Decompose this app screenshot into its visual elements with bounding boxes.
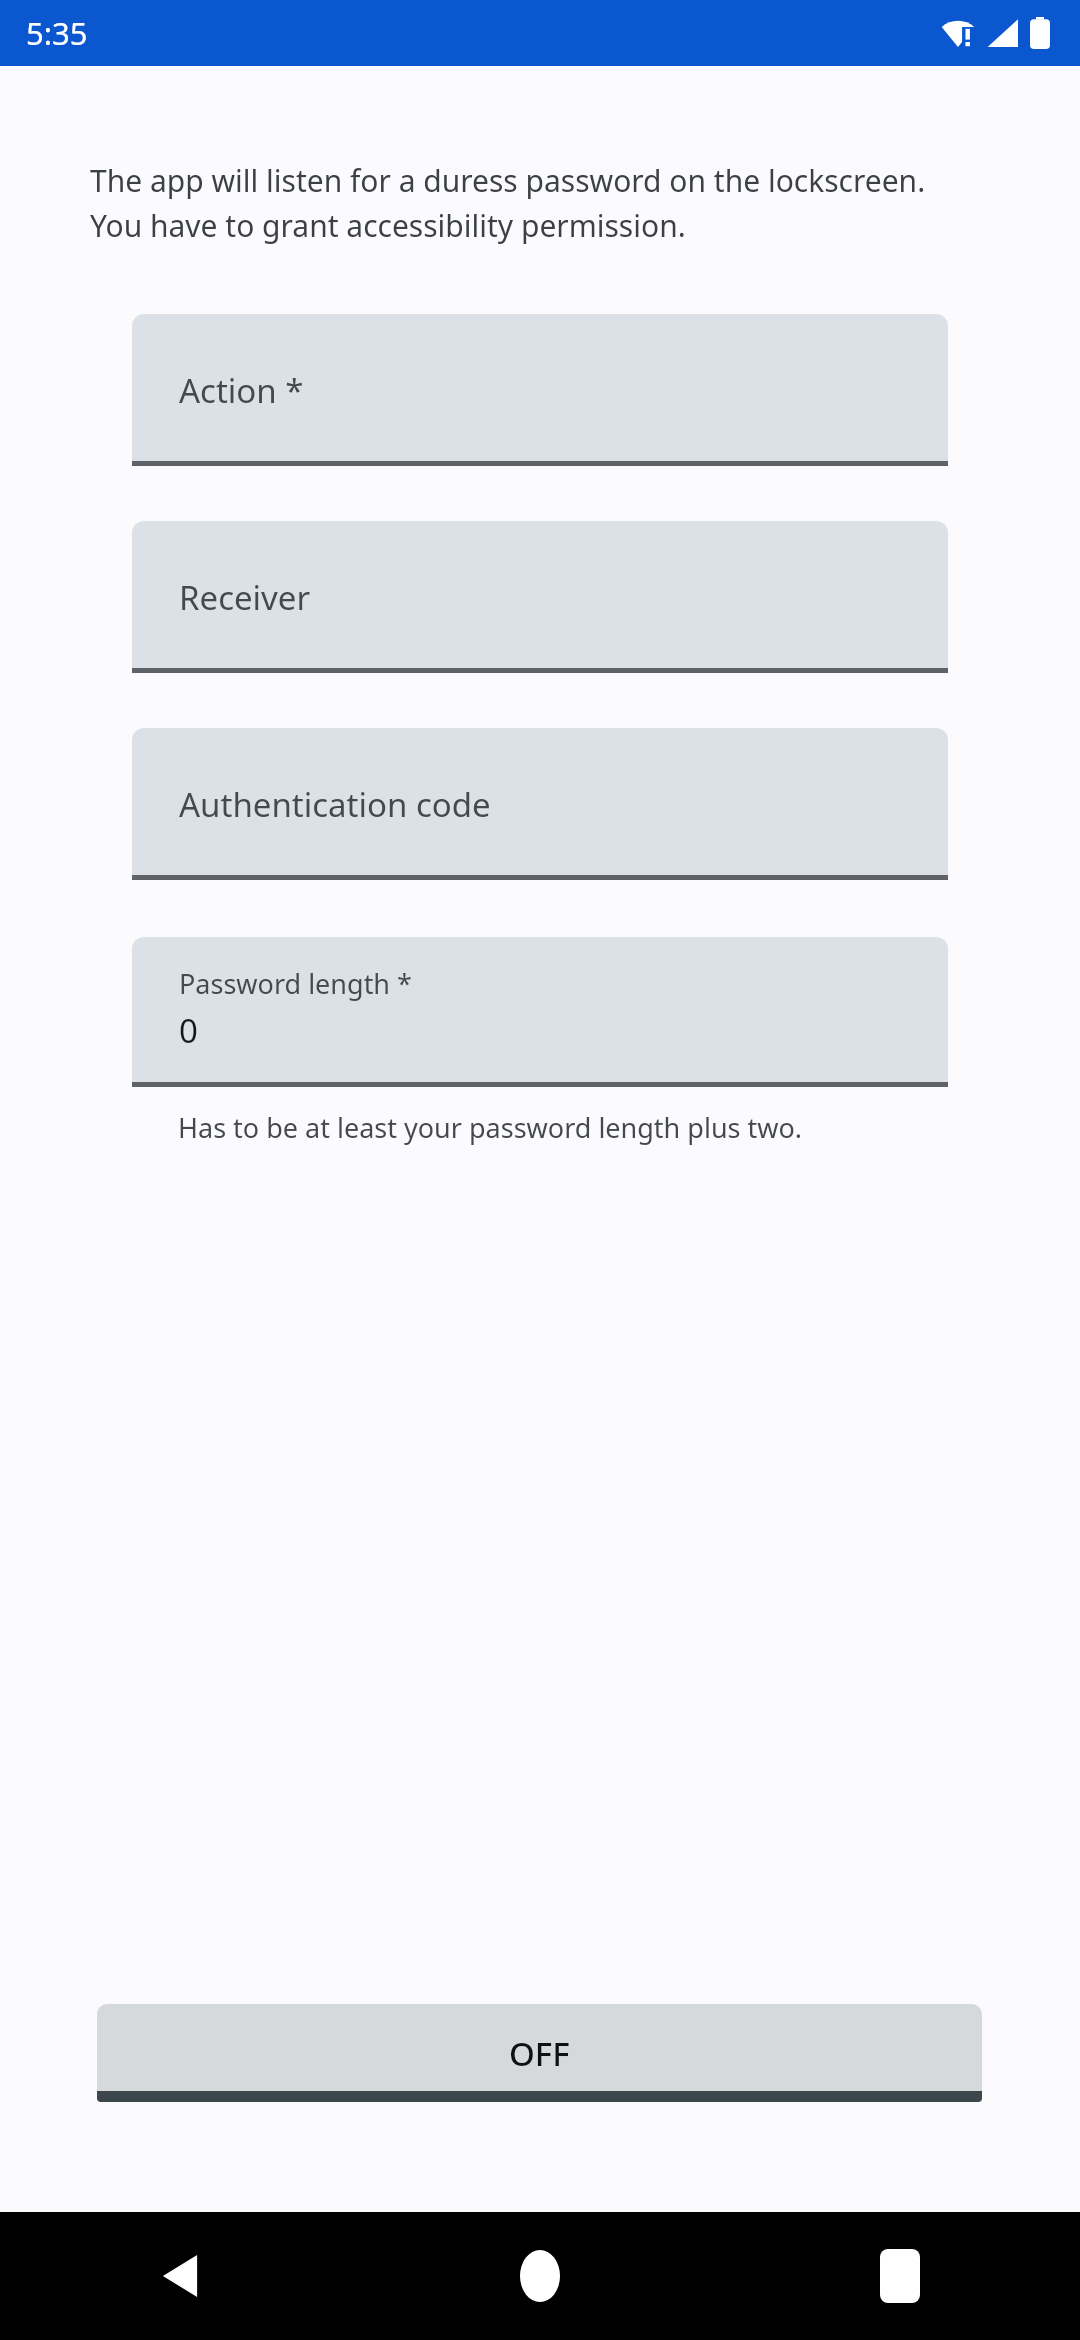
button[interactable]: Back bbox=[0, 2212, 360, 2340]
staticText: Action * bbox=[179, 368, 304, 413]
button[interactable]: OFF bbox=[97, 2004, 982, 2102]
button[interactable]: Receiver bbox=[132, 521, 948, 673]
button[interactable]: Home bbox=[360, 2212, 720, 2340]
staticText: 0 bbox=[179, 1008, 198, 1053]
staticText: 5:35 bbox=[26, 12, 88, 54]
staticText: OFF bbox=[509, 2031, 570, 2076]
staticText: The app will listen for a duress passwor… bbox=[90, 160, 982, 246]
staticText: Password length * bbox=[179, 965, 412, 1002]
button[interactable]: Recent apps bbox=[720, 2212, 1080, 2340]
staticText: Authentication code bbox=[179, 782, 491, 827]
staticText: Receiver bbox=[179, 575, 311, 620]
staticText: Has to be at least your password length … bbox=[178, 1109, 803, 1146]
button[interactable]: Authentication code bbox=[132, 728, 948, 880]
button[interactable]: Action * bbox=[132, 314, 948, 466]
button[interactable]: Password length * bbox=[132, 937, 948, 1087]
